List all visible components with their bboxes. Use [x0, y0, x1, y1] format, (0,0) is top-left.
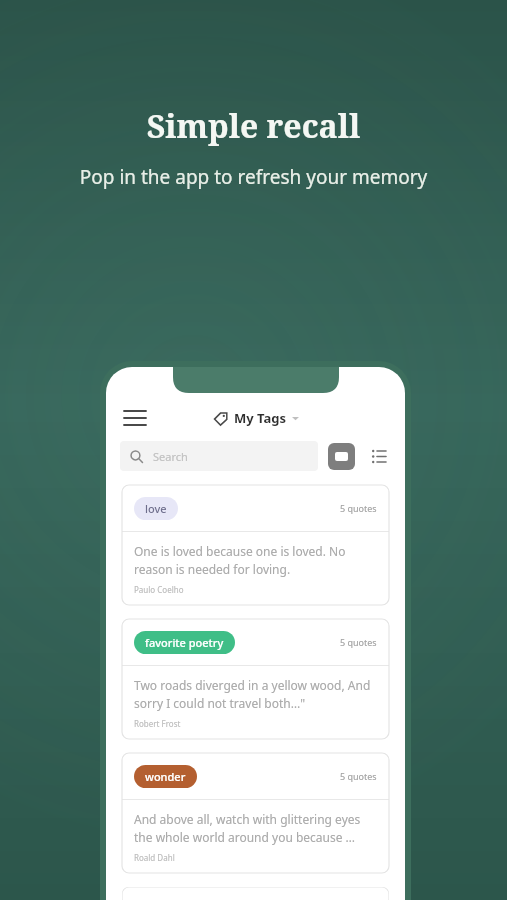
staticText: Roald Dahl [134, 852, 175, 863]
staticText: And above all, watch with glittering eye… [134, 811, 377, 846]
button[interactable]: List view [367, 444, 391, 468]
staticText: My Tags [234, 409, 287, 427]
button[interactable] [122, 887, 389, 900]
staticText: One is loved because one is loved. No re… [134, 543, 377, 578]
staticText: Two roads diverged in a yellow wood, And… [134, 677, 377, 712]
staticText: 5 quotes [340, 636, 377, 648]
staticText: Pop in the app to refresh your memory [0, 164, 507, 190]
staticText: 5 quotes [340, 502, 377, 514]
staticText: Paulo Coelho [134, 584, 184, 595]
staticText: Simple recall [0, 104, 507, 148]
staticText: love [145, 501, 167, 516]
button[interactable]: Card view [328, 443, 355, 470]
button[interactable]: wonder [122, 753, 389, 873]
button[interactable]: My Tags [213, 409, 299, 427]
button[interactable]: favorite poetry [122, 619, 389, 739]
staticText: favorite poetry [145, 635, 224, 650]
staticText: 5 quotes [340, 770, 377, 782]
button[interactable]: love [122, 485, 389, 605]
staticText: Search [153, 449, 188, 464]
staticText: Robert Frost [134, 718, 181, 729]
button[interactable]: Menu [120, 403, 150, 433]
staticText: wonder [145, 769, 186, 784]
button[interactable]: Search [120, 441, 318, 471]
